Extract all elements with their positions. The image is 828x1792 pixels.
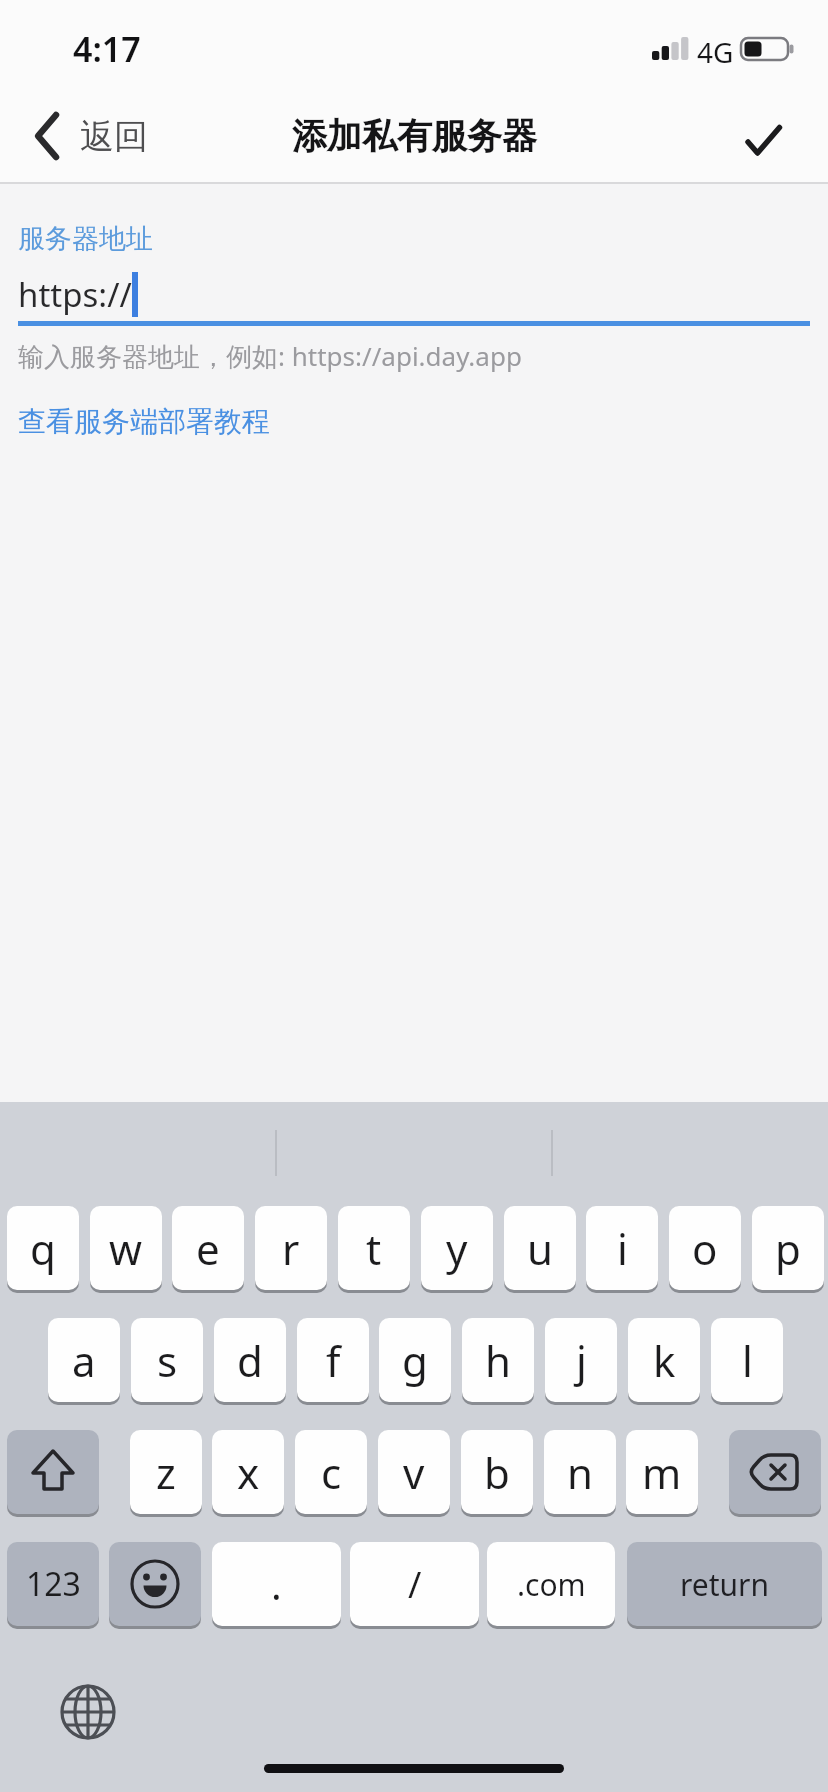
staticText: h xyxy=(485,1332,511,1389)
staticText: . xyxy=(271,1557,282,1611)
button[interactable]: w xyxy=(90,1206,162,1293)
button[interactable]: s xyxy=(131,1318,203,1405)
button[interactable]: 123 xyxy=(7,1542,99,1629)
staticText: t xyxy=(366,1220,382,1277)
button[interactable]: . xyxy=(212,1542,341,1629)
button[interactable]: l xyxy=(711,1318,783,1405)
staticText: g xyxy=(402,1332,428,1389)
staticText: 4G xyxy=(697,33,734,71)
button[interactable]: return xyxy=(627,1542,822,1629)
button[interactable]: j xyxy=(545,1318,617,1405)
staticText: e xyxy=(196,1220,220,1277)
button[interactable]: m xyxy=(626,1430,698,1517)
staticText: o xyxy=(692,1220,718,1277)
button[interactable] xyxy=(7,1430,99,1517)
button[interactable]: 查看服务端部署教程 xyxy=(18,404,270,439)
staticText: r xyxy=(282,1220,300,1277)
staticText: x xyxy=(237,1444,260,1501)
button[interactable] xyxy=(109,1542,201,1629)
button[interactable] xyxy=(58,1682,118,1742)
staticText: 输入服务器地址，例如: https://api.day.app xyxy=(18,338,522,374)
staticText: p xyxy=(775,1220,801,1277)
button[interactable]: a xyxy=(48,1318,120,1405)
button[interactable]: t xyxy=(338,1206,410,1293)
staticText: w xyxy=(109,1220,143,1277)
staticText: s xyxy=(157,1332,178,1389)
staticText: k xyxy=(653,1332,676,1389)
staticText: 返回 xyxy=(80,115,148,158)
staticText: f xyxy=(326,1332,341,1389)
button[interactable]: o xyxy=(669,1206,741,1293)
button[interactable]: f xyxy=(297,1318,369,1405)
staticText: v xyxy=(403,1444,425,1501)
staticText: 4:17 xyxy=(73,26,141,72)
button[interactable]: c xyxy=(295,1430,367,1517)
staticText: i xyxy=(617,1220,628,1277)
staticText: return xyxy=(680,1564,770,1605)
button[interactable]: h xyxy=(462,1318,534,1405)
staticText: https:// xyxy=(18,272,132,317)
button[interactable]: v xyxy=(378,1430,450,1517)
staticText: .com xyxy=(517,1564,586,1605)
button[interactable] xyxy=(729,1430,821,1517)
staticText: m xyxy=(642,1444,682,1501)
button[interactable]: 返回 xyxy=(24,90,164,182)
button[interactable]: b xyxy=(461,1430,533,1517)
button[interactable]: y xyxy=(421,1206,493,1293)
staticText: a xyxy=(72,1332,96,1389)
button[interactable] xyxy=(738,90,828,182)
staticText: d xyxy=(237,1332,263,1389)
button[interactable]: d xyxy=(214,1318,286,1405)
button[interactable]: p xyxy=(752,1206,824,1293)
staticText: / xyxy=(408,1560,422,1609)
staticText: z xyxy=(156,1444,176,1501)
button[interactable]: r xyxy=(255,1206,327,1293)
staticText: b xyxy=(484,1444,510,1501)
staticText: c xyxy=(321,1444,342,1501)
staticText: 添加私有服务器 xyxy=(292,114,537,158)
staticText: j xyxy=(576,1332,587,1389)
button[interactable]: .com xyxy=(487,1542,615,1629)
button[interactable]: q xyxy=(7,1206,79,1293)
button[interactable]: e xyxy=(172,1206,244,1293)
staticText: n xyxy=(567,1444,593,1501)
button[interactable]: / xyxy=(350,1542,479,1629)
button[interactable]: u xyxy=(504,1206,576,1293)
staticText: y xyxy=(446,1220,468,1277)
staticText: 123 xyxy=(26,1562,81,1606)
staticText: u xyxy=(527,1220,553,1277)
button[interactable]: g xyxy=(379,1318,451,1405)
button[interactable]: k xyxy=(628,1318,700,1405)
button[interactable]: x xyxy=(212,1430,284,1517)
button[interactable]: z xyxy=(130,1430,202,1517)
staticText: 服务器地址 xyxy=(18,222,153,256)
button[interactable]: n xyxy=(544,1430,616,1517)
staticText: l xyxy=(742,1332,753,1389)
button[interactable]: i xyxy=(586,1206,658,1293)
staticText: q xyxy=(30,1220,56,1277)
